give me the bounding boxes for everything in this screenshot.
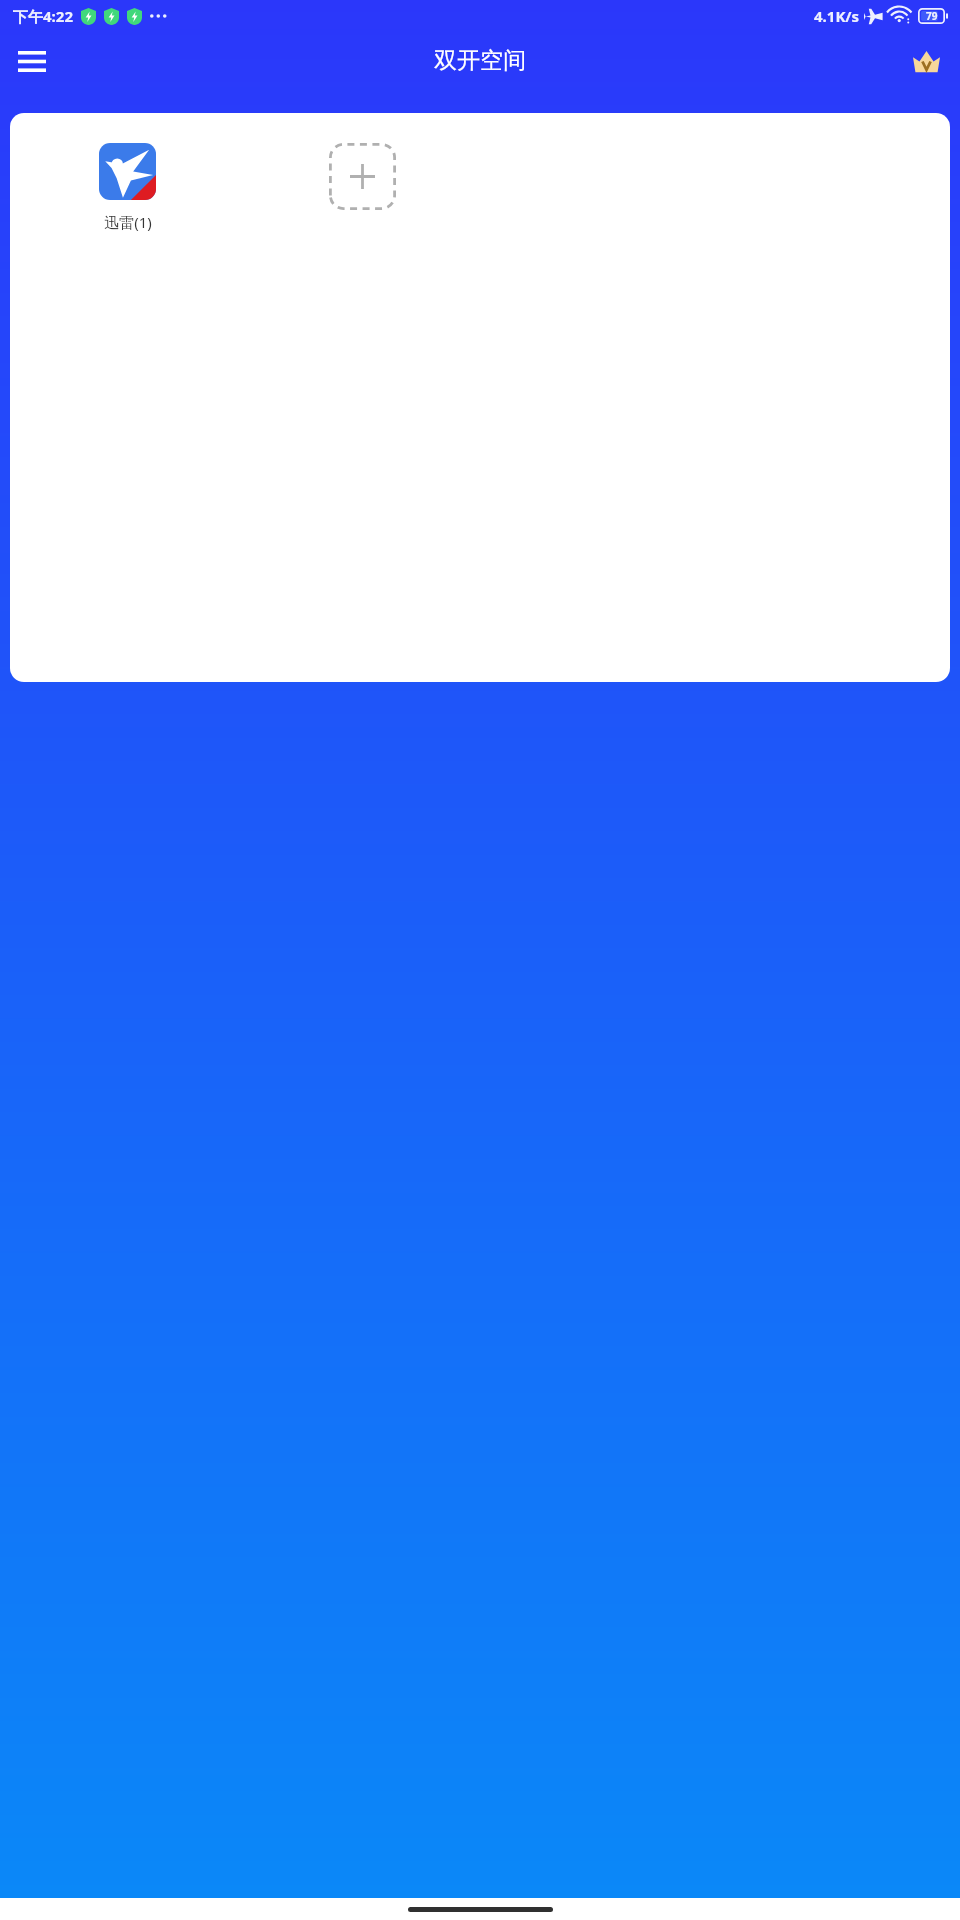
button[interactable]: Menu [4, 33, 60, 89]
staticText: 79 [926, 9, 938, 23]
button[interactable]: 迅雷(1) [10, 143, 245, 232]
staticText: 4.1K/s [814, 6, 860, 26]
staticText: 下午4:22 [13, 6, 73, 26]
staticText: 迅雷(1) [104, 212, 152, 232]
button[interactable]: VIP [900, 35, 952, 87]
button[interactable]: Add app [245, 143, 480, 210]
staticText: 双开空间 [434, 46, 526, 75]
